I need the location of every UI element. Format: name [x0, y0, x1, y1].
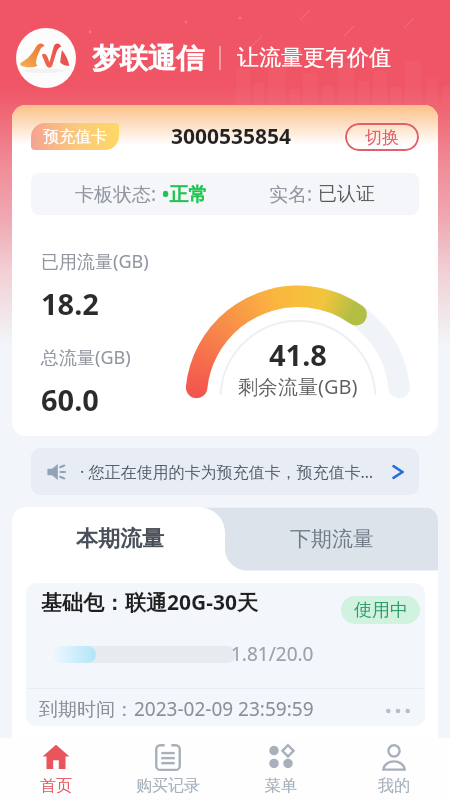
staticText: 本期流量	[76, 525, 164, 553]
staticText: •正常	[162, 181, 208, 207]
other: More options	[386, 700, 410, 720]
staticText: 我的	[378, 776, 410, 796]
staticText: 首页	[40, 776, 72, 796]
other: More	[391, 465, 405, 479]
staticText: 总流量(GB)	[41, 345, 131, 370]
button[interactable]: 购买记录	[112, 738, 224, 800]
button[interactable]: 我的	[337, 738, 450, 800]
staticText: 已认证	[318, 182, 375, 206]
button[interactable]: 菜单	[224, 738, 337, 800]
button[interactable]: 首页	[0, 738, 112, 800]
staticText: 60.0	[41, 380, 99, 419]
staticText: 下期流量	[290, 526, 374, 552]
staticText: 卡板状态:	[75, 181, 162, 207]
staticText: 让流量更有价值	[237, 44, 391, 72]
button[interactable]: 本期流量	[20, 507, 220, 570]
staticText: 1.81/20.0	[231, 641, 314, 667]
staticText: 已用流量(GB)	[41, 249, 149, 274]
staticText: 剩余流量(GB)	[238, 373, 358, 400]
button[interactable]: 切换	[345, 123, 419, 151]
button[interactable]: 下期流量	[232, 507, 432, 570]
staticText: 3000535854	[171, 122, 292, 151]
staticText: 到期时间：2023-02-09 23:59:59	[39, 696, 314, 722]
staticText: · 您正在使用的卡为预充值卡，预充值卡…	[80, 461, 374, 483]
staticText: 18.2	[41, 284, 99, 323]
staticText: 41.8	[269, 335, 327, 374]
button[interactable]: · 您正在使用的卡为预充值卡，预充值卡…	[31, 448, 419, 495]
staticText: 基础包：联通20G-30天	[41, 588, 258, 617]
staticText: 实名:	[269, 181, 318, 207]
staticText: 切换	[365, 127, 399, 148]
staticText: 使用中	[354, 599, 408, 622]
staticText: 购买记录	[136, 776, 200, 796]
staticText: 预充值卡	[43, 127, 107, 147]
staticText: 梦联通信	[92, 41, 204, 76]
staticText: 菜单	[265, 776, 297, 796]
